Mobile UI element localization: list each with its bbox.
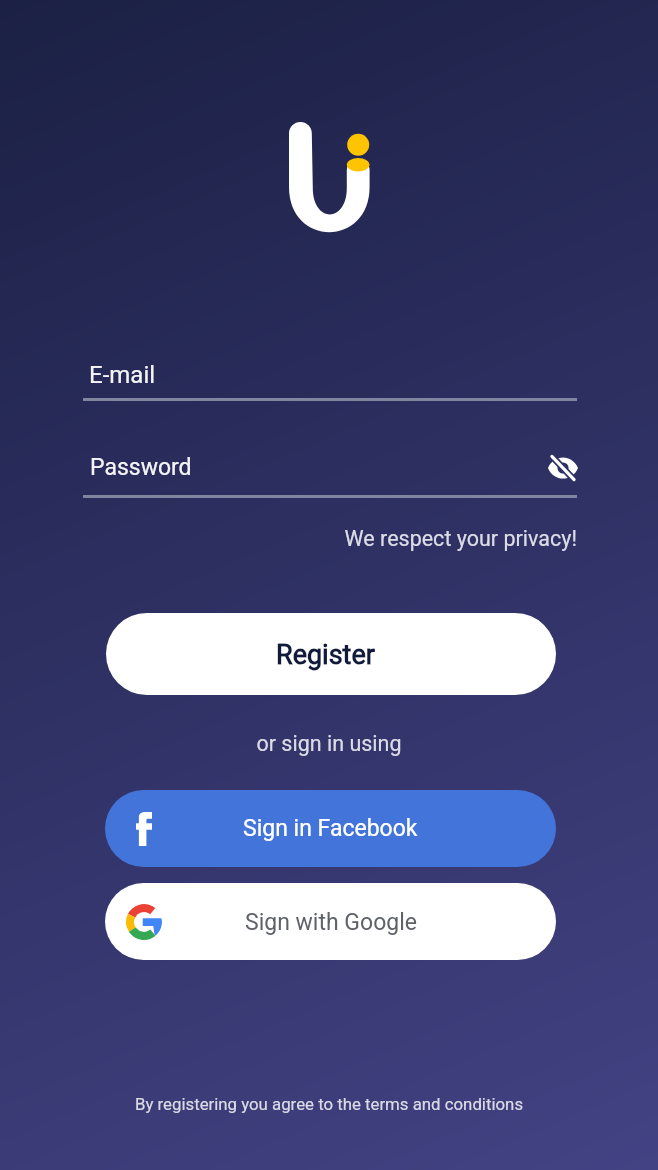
button[interactable]: E-mail	[83, 361, 577, 401]
staticText: We respect your privacy!	[0, 526, 577, 551]
staticText: or sign in using	[0, 731, 658, 756]
button[interactable]: Sign with Google	[105, 883, 556, 960]
staticText: E-mail	[89, 361, 156, 389]
staticText: Sign with Google	[245, 909, 417, 936]
button[interactable]: Register	[106, 613, 556, 695]
staticText: Password	[90, 454, 192, 481]
button[interactable]: Sign in Facebook	[105, 790, 556, 867]
button[interactable]: Show password	[541, 446, 585, 490]
staticText: Sign in Facebook	[243, 815, 418, 842]
button[interactable]: Password	[83, 454, 577, 498]
button[interactable]: By registering you agree to the terms an…	[0, 1094, 658, 1114]
staticText: Register	[276, 639, 375, 671]
